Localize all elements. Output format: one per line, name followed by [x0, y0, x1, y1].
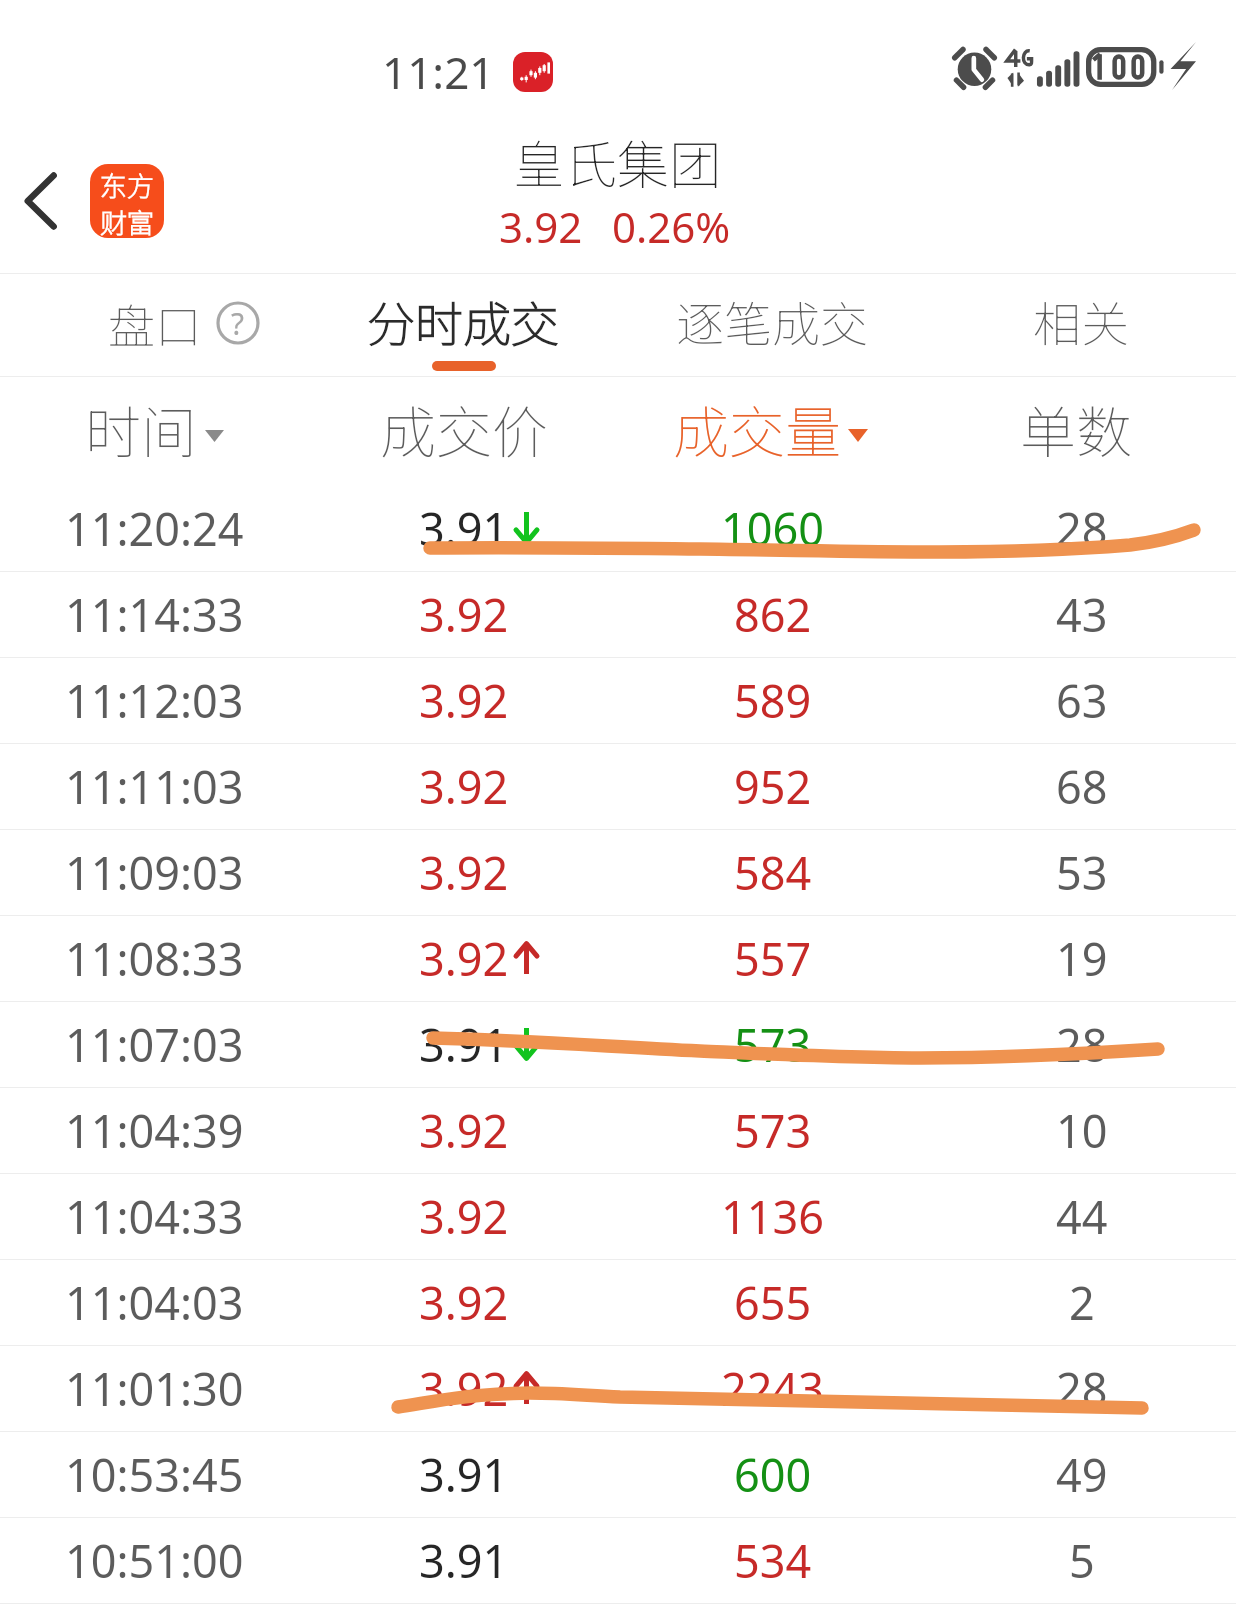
staticText: 3.92: [419, 670, 509, 731]
staticText: 1060: [721, 498, 824, 559]
staticText: 3.92: [419, 1186, 509, 1247]
staticText: 3.92: [419, 756, 509, 817]
staticText: 3.92: [419, 1100, 509, 1161]
staticText: 10:51:00: [65, 1530, 244, 1591]
button[interactable]: 11:08:33: [0, 916, 1236, 1001]
staticText: 68: [1056, 756, 1108, 817]
staticText: 19: [1056, 928, 1108, 989]
staticText: 11:04:33: [65, 1186, 244, 1247]
staticText: 3.92: [419, 928, 509, 989]
staticText: 862: [734, 584, 812, 645]
staticText: 东方: [100, 165, 154, 204]
staticText: 10: [1056, 1100, 1108, 1161]
staticText: 28: [1056, 1358, 1108, 1419]
staticText: 2243: [721, 1358, 824, 1419]
button[interactable]: 相关: [927, 274, 1236, 376]
staticText: 3.91: [419, 1444, 509, 1505]
staticText: 逐笔成交: [676, 286, 869, 356]
staticText: 财富: [100, 202, 154, 237]
button[interactable]: 11:04:39: [0, 1088, 1236, 1173]
staticText: 3.92: [419, 1358, 509, 1419]
button[interactable]: 11:04:03: [0, 1260, 1236, 1345]
staticText: 11:09:03: [65, 842, 244, 903]
staticText: 3.92: [499, 198, 583, 255]
button[interactable]: 11:07:03: [0, 1002, 1236, 1087]
staticText: ?: [231, 303, 245, 344]
staticText: 573: [734, 1100, 812, 1161]
staticText: 成交量: [673, 388, 841, 469]
staticText: 盘口: [108, 289, 202, 357]
staticText: 573: [734, 1014, 812, 1075]
staticText: 28: [1056, 498, 1108, 559]
staticText: 3.92: [419, 842, 509, 903]
staticText: 43: [1056, 584, 1108, 645]
button[interactable]: 东方: [90, 164, 164, 238]
button[interactable]: 11:01:30: [0, 1346, 1236, 1431]
button[interactable]: 11:04:33: [0, 1174, 1236, 1259]
button[interactable]: 11:11:03: [0, 744, 1236, 829]
staticText: 11:11:03: [65, 756, 244, 817]
staticText: 1136: [721, 1186, 824, 1247]
staticText: 3.91: [419, 1014, 509, 1075]
button[interactable]: 时间: [0, 374, 309, 483]
button[interactable]: 11:12:03: [0, 658, 1236, 743]
staticText: 11:07:03: [65, 1014, 244, 1075]
button[interactable]: 逐笔成交: [618, 274, 927, 376]
staticText: 534: [734, 1530, 812, 1591]
staticText: 皇氏集团: [513, 124, 722, 199]
button[interactable]: 11:09:03: [0, 830, 1236, 915]
staticText: 600: [734, 1444, 812, 1505]
staticText: 11:08:33: [65, 928, 244, 989]
button[interactable]: 11:14:33: [0, 572, 1236, 657]
staticText: 5: [1069, 1530, 1095, 1591]
staticText: 584: [734, 842, 812, 903]
staticText: 655: [734, 1272, 812, 1333]
staticText: 63: [1056, 670, 1108, 731]
staticText: 589: [734, 670, 812, 731]
staticText: 11:04:39: [65, 1100, 244, 1161]
staticText: 11:14:33: [65, 584, 244, 645]
staticText: 单数: [1020, 388, 1132, 469]
staticText: 44: [1056, 1186, 1108, 1247]
staticText: 49: [1056, 1444, 1108, 1505]
staticText: 3.92: [419, 584, 509, 645]
button[interactable]: 10:51:00: [0, 1518, 1236, 1603]
button[interactable]: 盘口: [0, 274, 309, 376]
button[interactable]: 11:20:24: [0, 486, 1236, 571]
staticText: 11:04:03: [65, 1272, 244, 1333]
button[interactable]: 分时成交: [309, 274, 618, 376]
staticText: 时间: [85, 388, 197, 469]
button[interactable]: 10:53:45: [0, 1432, 1236, 1517]
staticText: 11:12:03: [65, 670, 244, 731]
staticText: 分时成交: [367, 286, 560, 356]
staticText: 10:53:45: [65, 1444, 244, 1505]
staticText: 相关: [1033, 286, 1130, 356]
staticText: 11:20:24: [65, 498, 244, 559]
staticText: 3.91: [419, 498, 509, 559]
staticText: 3.91: [419, 1530, 509, 1591]
staticText: 成交价: [380, 388, 548, 469]
staticText: 0.26%: [612, 198, 731, 255]
staticText: 28: [1056, 1014, 1108, 1075]
staticText: 952: [734, 756, 812, 817]
staticText: 2: [1069, 1272, 1095, 1333]
staticText: 557: [734, 928, 812, 989]
staticText: 53: [1056, 842, 1108, 903]
staticText: 3.92: [419, 1272, 509, 1333]
staticText: 11:01:30: [65, 1358, 244, 1419]
staticText: 11:21: [382, 42, 495, 102]
button[interactable]: 成交量: [618, 374, 927, 483]
button[interactable]: Back: [8, 154, 72, 240]
